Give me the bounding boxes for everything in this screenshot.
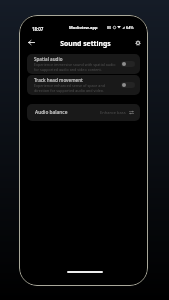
staticText: Enhance bass	[100, 110, 126, 115]
staticText: 18:07	[32, 26, 44, 32]
button[interactable]: Audio balance	[27, 104, 140, 121]
staticText: Experience enhanced sense of space and	[34, 83, 105, 88]
staticText: Spatial audio	[34, 56, 63, 62]
button[interactable]: Track head movement	[27, 75, 140, 95]
button[interactable]: Spatial audio	[27, 54, 140, 74]
staticText: Track head movement	[34, 77, 83, 83]
button[interactable]: Back	[25, 36, 38, 49]
staticText: 80	[107, 25, 112, 30]
button[interactable]: Toggle	[121, 61, 135, 67]
staticText: Mockview.app	[69, 25, 98, 30]
staticText: 64%	[126, 25, 134, 30]
button[interactable]: Settings	[131, 36, 144, 49]
staticText: for supported audio and video content.	[34, 67, 102, 72]
button[interactable]: Toggle	[121, 82, 135, 88]
staticText: Audio balance	[35, 109, 68, 116]
staticText: Sound settings	[60, 39, 111, 48]
staticText: Experience immersive sound with spatial …	[34, 62, 116, 67]
staticText: direction for supported audio and video.	[34, 88, 104, 93]
